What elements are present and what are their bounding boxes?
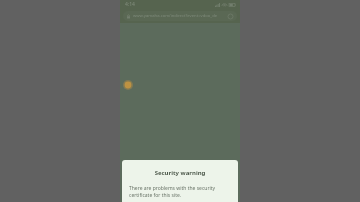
button[interactable]: Security warning	[122, 160, 238, 202]
staticText: Security warning	[129, 169, 231, 177]
staticText: www.yamaha.com/indirect?event=vdoo_de	[133, 13, 226, 19]
button[interactable]: Reload page	[226, 12, 234, 20]
staticText: 4:14	[125, 1, 135, 8]
staticText: There are problems with the security cer…	[129, 185, 231, 199]
button[interactable]: www.yamaha.com/indirect?event=vdoo_de	[123, 11, 237, 21]
